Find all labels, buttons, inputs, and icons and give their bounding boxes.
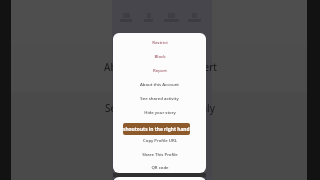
- staticText: QR code: [151, 164, 169, 170]
- button[interactable]: About this Account: [113, 77, 206, 91]
- button[interactable]: Saved: [183, 13, 206, 23]
- button[interactable]: Share This Profile: [113, 147, 206, 161]
- button[interactable]: Restrict: [113, 35, 206, 49]
- button[interactable]: shoutouts in the right hand: [123, 123, 190, 135]
- button[interactable]: Copy Profile URL: [113, 133, 206, 147]
- button[interactable]: Posts: [114, 13, 137, 23]
- staticText: See shared activity only: [105, 101, 215, 115]
- button[interactable]: Reels: [137, 13, 160, 23]
- button[interactable]: Hide your story: [113, 105, 206, 119]
- staticText: Report: [153, 67, 167, 73]
- staticText: shoutouts in the right hand: [123, 126, 190, 133]
- staticText: Block: [154, 53, 166, 59]
- staticText: Restrict: [152, 39, 168, 45]
- staticText: About this Account: [140, 81, 179, 87]
- button[interactable]: Copy Profile Link: [113, 119, 206, 133]
- staticText: About this Account alert: [104, 60, 217, 74]
- staticText: Hide your story: [144, 109, 176, 115]
- staticText: Copy Profile URL: [143, 137, 177, 143]
- staticText: Share This Profile: [142, 151, 178, 157]
- staticText: See shared activity: [140, 95, 179, 101]
- button[interactable]: Tagged: [160, 13, 183, 23]
- staticText: Copy Profile Link: [142, 123, 177, 129]
- button[interactable]: See shared activity: [113, 91, 206, 105]
- button[interactable]: Report: [113, 63, 206, 77]
- button[interactable]: QR code: [113, 161, 206, 173]
- button[interactable]: Block: [113, 49, 206, 63]
